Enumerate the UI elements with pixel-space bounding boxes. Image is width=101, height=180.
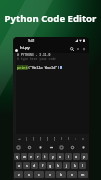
button[interactable]: {: [31, 135, 36, 142]
staticText: print: [17, 65, 28, 70]
staticText: l: [82, 163, 83, 168]
staticText: ("Hello World"): [28, 65, 60, 70]
button[interactable]: w: [21, 153, 27, 160]
button[interactable]: Keyboard tool 7: [81, 145, 86, 150]
button[interactable]: ]: [52, 135, 57, 142]
button[interactable]: c: [34, 171, 44, 178]
button[interactable]: Keyboard tool 2: [27, 145, 32, 150]
staticText: w: [23, 154, 26, 159]
staticText: :: [75, 137, 76, 141]
staticText: k: [74, 163, 76, 168]
button[interactable]: f: [39, 162, 46, 169]
button[interactable]: Keyboard tool 5: [59, 145, 64, 150]
staticText: ]: [54, 137, 56, 141]
button[interactable]: l: [79, 162, 86, 169]
button[interactable]: u: [57, 153, 64, 160]
button[interactable]: g: [47, 162, 54, 169]
button[interactable]: b: [56, 171, 66, 178]
button[interactable]: Search: [70, 47, 74, 51]
staticText: o: [75, 154, 78, 159]
staticText: {: [33, 137, 35, 141]
button[interactable]: More options: [82, 47, 86, 51]
button[interactable]: |: [24, 135, 29, 142]
button[interactable]: s: [23, 162, 30, 169]
staticText: y: [52, 154, 54, 159]
staticText: t: [44, 154, 46, 159]
staticText: }: [40, 137, 42, 141]
staticText: s: [26, 163, 28, 168]
button[interactable]: n: [67, 171, 77, 178]
button[interactable]: z: [14, 171, 23, 178]
button[interactable]: t: [42, 153, 48, 160]
staticText: f: [42, 163, 44, 168]
staticText: c: [38, 172, 40, 177]
button[interactable]: File type: [15, 49, 18, 52]
button[interactable]: :: [73, 135, 78, 142]
staticText: [: [47, 137, 49, 141]
button[interactable]: }: [38, 135, 43, 142]
button[interactable]: x: [24, 171, 33, 178]
button[interactable]: y: [49, 153, 56, 160]
button[interactable]: →: [17, 135, 22, 142]
staticText: m: [81, 172, 85, 177]
staticText: e: [30, 154, 33, 159]
button[interactable]: Keyboard tool 4: [49, 145, 54, 150]
staticText: q: [16, 154, 19, 159]
staticText: (: [61, 137, 62, 141]
button[interactable]: Keyboard tool 1: [16, 145, 21, 150]
staticText: hi.py: [20, 45, 30, 51]
staticText: |: [26, 137, 28, 141]
button[interactable]: q: [14, 153, 20, 160]
staticText: =: [82, 137, 84, 141]
staticText: ): [68, 137, 69, 141]
button[interactable]: r: [35, 153, 41, 160]
button[interactable]: (: [59, 135, 64, 142]
button[interactable]: Keyboard tool 3: [38, 145, 43, 150]
staticText: g: [49, 163, 52, 168]
staticText: p: [83, 154, 86, 159]
button[interactable]: v: [45, 171, 55, 178]
button[interactable]: m: [78, 171, 88, 178]
button[interactable]: Run code: [76, 47, 80, 51]
button[interactable]: a: [16, 162, 22, 169]
staticText: j: [66, 163, 67, 168]
staticText: r: [37, 154, 39, 159]
button[interactable]: k: [71, 162, 78, 169]
staticText: # type here your code: [17, 57, 56, 61]
staticText: n: [71, 172, 74, 177]
button[interactable]: e: [28, 153, 34, 160]
staticText: # PYTHON3 - 3.11.0: [17, 53, 51, 57]
staticText: 9:41: [28, 38, 35, 43]
button[interactable]: d: [31, 162, 38, 169]
button[interactable]: ): [66, 135, 71, 142]
staticText: Python Code Editor: [0, 12, 101, 25]
button[interactable]: o: [73, 153, 80, 160]
staticText: →: [18, 137, 21, 141]
button[interactable]: =: [80, 135, 85, 142]
staticText: b: [60, 172, 63, 177]
staticText: z: [18, 172, 20, 177]
button[interactable]: [: [45, 135, 50, 142]
staticText: v: [49, 172, 51, 177]
button[interactable]: h: [55, 162, 62, 169]
button[interactable]: p: [81, 153, 88, 160]
button[interactable]: i: [65, 153, 72, 160]
button[interactable]: Keyboard tool 6: [70, 145, 75, 150]
staticText: /storage/emulated/0/hi.py: [20, 51, 50, 54]
staticText: x: [28, 172, 30, 177]
staticText: u: [59, 154, 62, 159]
staticText: a: [18, 163, 21, 168]
button[interactable]: j: [63, 162, 70, 169]
staticText: d: [33, 163, 36, 168]
staticText: h: [57, 163, 60, 168]
staticText: i: [68, 154, 69, 159]
